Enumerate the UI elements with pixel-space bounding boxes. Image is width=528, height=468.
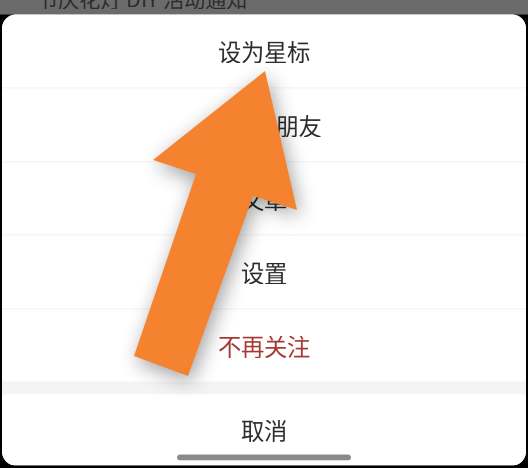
staticText: 文章 [241,182,287,215]
button[interactable]: 设为星标 [2,14,526,87]
button[interactable]: 设置 [2,235,526,308]
button[interactable]: 不再关注 [2,309,526,381]
button[interactable]: 推荐给朋友 [2,88,526,161]
staticText: 取消 [241,413,287,446]
staticText: 不再关注 [218,329,310,362]
staticText: 推荐给朋友 [206,108,321,142]
button[interactable]: 文章 [2,162,526,234]
button[interactable]: 取消 [2,394,526,465]
staticText: 设为星标 [218,34,310,68]
staticText: 设置 [241,255,287,289]
staticText: 节庆花灯 DIY 活动通知 [37,0,247,13]
